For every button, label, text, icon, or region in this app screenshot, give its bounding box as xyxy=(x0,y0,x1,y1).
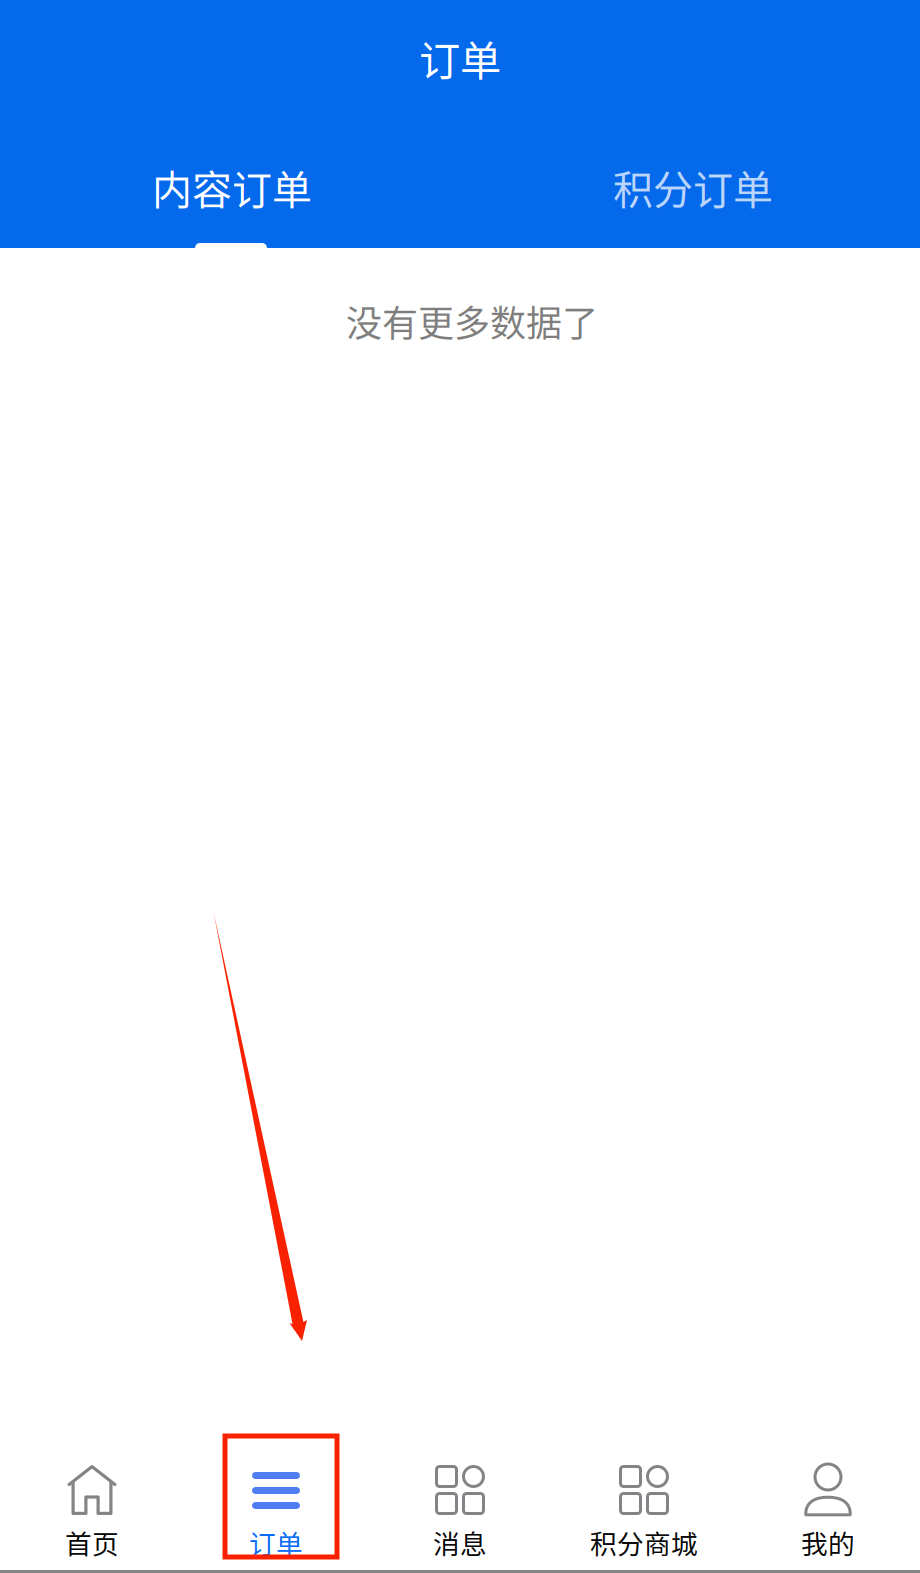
staticText: 订单 xyxy=(419,28,501,88)
staticText: 内容订单 xyxy=(152,158,312,216)
button[interactable]: 积分订单 xyxy=(460,151,920,223)
button[interactable]: 消息 xyxy=(368,1422,552,1570)
staticText: 订单 xyxy=(249,1523,303,1562)
button[interactable]: 积分商城 xyxy=(552,1422,736,1570)
button[interactable]: 内容订单 xyxy=(0,151,460,223)
button[interactable]: 我的 xyxy=(736,1422,920,1570)
staticText: 消息 xyxy=(433,1523,487,1562)
staticText: 积分订单 xyxy=(613,158,773,216)
button[interactable]: 订单 xyxy=(184,1422,368,1570)
staticText: 没有更多数据了 xyxy=(346,295,598,347)
staticText: 积分商城 xyxy=(590,1523,698,1562)
staticText: 我的 xyxy=(801,1523,855,1562)
button[interactable]: 首页 xyxy=(0,1422,184,1570)
staticText: 首页 xyxy=(65,1523,119,1562)
